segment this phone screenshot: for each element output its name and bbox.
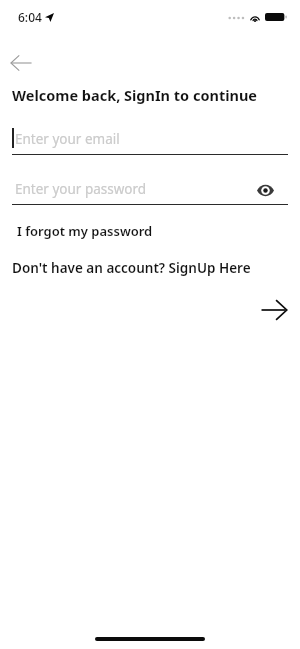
button[interactable]: Continue <box>255 291 293 329</box>
button[interactable]: Show password <box>249 174 281 206</box>
staticText: Don't have an account? SignUp Here <box>12 259 251 277</box>
button[interactable]: Enter your email <box>12 124 288 156</box>
staticText: I forgot my password <box>17 222 153 240</box>
staticText: Enter your password <box>15 180 147 198</box>
button[interactable]: I forgot my password <box>12 218 158 244</box>
staticText: Enter your email <box>15 130 120 148</box>
staticText: Welcome back, SignIn to continue <box>12 85 258 105</box>
button[interactable]: Enter your password <box>12 174 288 206</box>
staticText: 6:04 <box>18 9 42 25</box>
button[interactable]: Back <box>4 46 38 80</box>
button[interactable]: Don't have an account? SignUp Here <box>8 255 255 281</box>
